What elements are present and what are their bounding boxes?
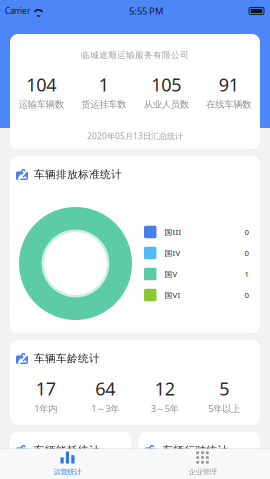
staticText: 12 xyxy=(155,376,175,401)
staticText: 105 xyxy=(151,72,181,97)
staticText: 0 xyxy=(244,290,248,300)
staticText: 1 xyxy=(99,72,109,97)
staticText: 企业管理 xyxy=(188,467,216,477)
staticText: Carrier xyxy=(5,6,30,16)
staticText: 货运挂车数 xyxy=(81,99,126,110)
staticText: 1 xyxy=(244,269,248,279)
staticText: 5 xyxy=(219,376,229,401)
staticText: 1年内 xyxy=(34,402,57,415)
staticText: 3～5年 xyxy=(151,402,179,415)
staticText: 1～3年 xyxy=(91,402,119,415)
staticText: 0 xyxy=(244,227,248,237)
staticText: 在线车辆数 xyxy=(206,99,251,110)
staticText: 国V xyxy=(164,269,177,279)
staticText: 车辆能耗统计 xyxy=(34,444,100,457)
button[interactable]: 运营统计 xyxy=(0,451,135,476)
staticText: 运营统计 xyxy=(53,467,81,477)
staticText: 临城途顺运输服务有限公司 xyxy=(81,49,189,60)
button[interactable]: 企业管理 xyxy=(135,451,270,476)
staticText: 车辆车龄统计 xyxy=(34,352,100,365)
staticText: 91 xyxy=(219,72,239,97)
staticText: 17 xyxy=(36,376,56,401)
staticText: 运输车辆数 xyxy=(19,99,64,110)
staticText: 2020年05月13日汇总统计 xyxy=(87,130,183,142)
staticText: 从业人员数 xyxy=(144,99,189,110)
staticText: 国IV xyxy=(164,248,180,258)
staticText: 0 xyxy=(244,248,248,258)
staticText: 5年以上 xyxy=(208,402,240,415)
staticText: 5:55 PM xyxy=(129,5,163,17)
staticText: 车辆行驶统计 xyxy=(162,444,228,457)
staticText: 64 xyxy=(95,376,115,401)
staticText: 104 xyxy=(26,72,56,97)
staticText: 车辆排放标准统计 xyxy=(34,168,122,181)
staticText: 国III xyxy=(164,227,181,237)
staticText: 国VI xyxy=(164,290,180,300)
